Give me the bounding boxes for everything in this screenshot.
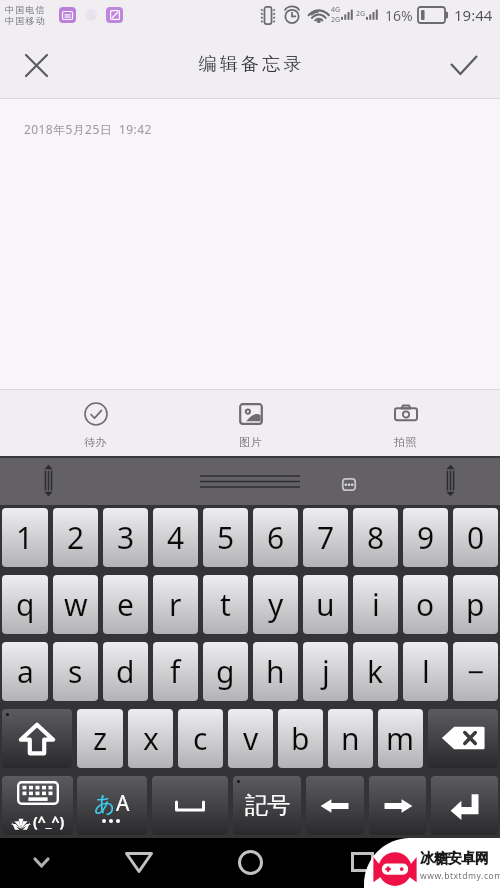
button[interactable]: a: [2, 642, 48, 701]
staticText: 8: [367, 517, 385, 558]
button[interactable]: k: [353, 642, 398, 701]
button[interactable]: Recents: [344, 844, 380, 880]
staticText: 16%: [385, 6, 413, 25]
staticText: 19:44: [454, 5, 493, 25]
staticText: f: [170, 651, 181, 692]
staticText: l: [422, 651, 430, 692]
button[interactable]: Right: [369, 776, 426, 835]
staticText: x: [143, 718, 159, 759]
button[interactable]: g: [203, 642, 248, 701]
button[interactable]: 图片: [173, 390, 328, 456]
button[interactable]: h: [253, 642, 298, 701]
button[interactable]: Shift: [2, 709, 72, 768]
button[interactable]: q: [2, 575, 48, 634]
button[interactable]: e: [103, 575, 148, 634]
button[interactable]: More: [341, 477, 357, 492]
button[interactable]: Keyboard settings: [2, 776, 73, 835]
staticText: w: [64, 584, 88, 625]
staticText: t: [220, 584, 231, 625]
button[interactable]: 3: [103, 508, 148, 567]
button[interactable]: d: [103, 642, 148, 701]
staticText: −: [467, 651, 485, 692]
staticText: A: [116, 789, 130, 818]
button[interactable]: j: [303, 642, 348, 701]
button[interactable]: y: [253, 575, 298, 634]
button[interactable]: 5: [203, 508, 248, 567]
button[interactable]: s: [53, 642, 98, 701]
staticText: 中国电信: [5, 4, 46, 15]
button[interactable]: Resize keyboard: [445, 464, 456, 497]
button[interactable]: t: [203, 575, 248, 634]
button[interactable]: 2: [53, 508, 98, 567]
staticText: p: [466, 584, 485, 625]
staticText: 5: [217, 517, 235, 558]
button[interactable]: 待办: [18, 390, 173, 456]
staticText: 7: [317, 517, 335, 558]
button[interactable]: n: [328, 709, 373, 768]
staticText: b: [291, 718, 310, 759]
button[interactable]: Backspace: [428, 709, 498, 768]
button[interactable]: c: [178, 709, 223, 768]
button[interactable]: o: [403, 575, 448, 634]
staticText: m: [386, 718, 415, 759]
button[interactable]: Enter: [431, 776, 498, 835]
button[interactable]: Home: [232, 844, 268, 880]
staticText: 9: [417, 517, 435, 558]
staticText: 記号: [245, 791, 290, 820]
staticText: o: [416, 584, 435, 625]
button[interactable]: 6: [253, 508, 298, 567]
staticText: q: [16, 584, 35, 625]
staticText: y: [268, 584, 284, 625]
staticText: 2G: [356, 9, 366, 19]
button[interactable]: p: [453, 575, 498, 634]
button[interactable]: 0: [453, 508, 498, 567]
button[interactable]: f: [153, 642, 198, 701]
button[interactable]: Resize keyboard: [43, 464, 54, 497]
button[interactable]: 9: [403, 508, 448, 567]
button[interactable]: b: [278, 709, 323, 768]
staticText: 图片: [239, 435, 263, 449]
button[interactable]: Save: [444, 45, 484, 85]
staticText: あ: [94, 791, 116, 817]
staticText: s: [68, 651, 83, 692]
button[interactable]: 8: [353, 508, 398, 567]
button[interactable]: Symbols: [233, 776, 301, 835]
staticText: u: [316, 584, 335, 625]
button[interactable]: r: [153, 575, 198, 634]
button[interactable]: Space: [152, 776, 228, 835]
staticText: www.btxtdmy.com: [420, 870, 500, 882]
staticText: j: [322, 651, 330, 692]
staticText: 拍照: [394, 435, 418, 449]
button[interactable]: Input mode: [77, 776, 147, 835]
button[interactable]: Hide keyboard: [23, 844, 59, 880]
button[interactable]: z: [77, 709, 123, 768]
staticText: i: [372, 584, 380, 625]
button[interactable]: v: [228, 709, 273, 768]
button[interactable]: i: [353, 575, 398, 634]
staticText: 0: [467, 517, 485, 558]
button[interactable]: m: [378, 709, 423, 768]
button[interactable]: Left: [306, 776, 364, 835]
staticText: 3: [117, 517, 135, 558]
staticText: h: [266, 651, 285, 692]
staticText: 1: [16, 517, 34, 558]
button[interactable]: 4: [153, 508, 198, 567]
staticText: z: [93, 718, 108, 759]
staticText: 4: [167, 517, 185, 558]
staticText: 2018年5月25日 19:42: [24, 121, 152, 137]
staticText: n: [341, 718, 360, 759]
button[interactable]: 7: [303, 508, 348, 567]
button[interactable]: x: [128, 709, 173, 768]
staticText: v: [243, 718, 259, 759]
button[interactable]: 1: [2, 508, 48, 567]
button[interactable]: Back: [121, 844, 157, 880]
button[interactable]: w: [53, 575, 98, 634]
button[interactable]: u: [303, 575, 348, 634]
button[interactable]: l: [403, 642, 448, 701]
button[interactable]: 拍照: [328, 390, 483, 456]
staticText: 冰糖安卓网: [420, 850, 489, 868]
button[interactable]: −: [453, 642, 498, 701]
staticText: 4G: [331, 5, 341, 15]
button[interactable]: Close: [16, 45, 56, 85]
staticText: e: [117, 584, 134, 625]
